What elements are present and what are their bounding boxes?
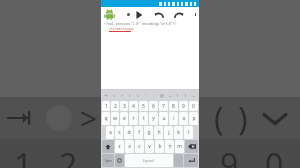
- button[interactable]: Shift: [102, 140, 114, 153]
- button[interactable]: i: [169, 112, 178, 125]
- staticText: w: [113, 115, 117, 122]
- button[interactable]: k: [174, 126, 183, 139]
- button[interactable]: e: [120, 112, 128, 125]
- button[interactable]: g: [144, 126, 153, 139]
- staticText: ": [145, 93, 147, 98]
- staticText: 0: [265, 143, 284, 168]
- button[interactable]: ⌄: [190, 91, 198, 100]
- button[interactable]: 0: [189, 101, 198, 111]
- staticText: 3: [123, 103, 126, 110]
- staticText: q: [104, 115, 108, 122]
- staticText: 5: [142, 103, 145, 110]
- button[interactable]: >: [118, 91, 126, 100]
- button[interactable]: v: [145, 140, 154, 153]
- staticText: :: [153, 93, 155, 98]
- staticText: 8: [172, 103, 175, 110]
- staticText: v: [148, 143, 151, 150]
- staticText: Espanol: [143, 159, 155, 163]
- staticText: z: [118, 143, 121, 150]
- button[interactable]: Settings: [115, 154, 124, 167]
- button[interactable]: m: [175, 140, 184, 153]
- button[interactable]: Run: [133, 9, 144, 20]
- staticText: <LinearLayout: [109, 27, 134, 31]
- button[interactable]: d: [124, 126, 133, 139]
- button[interactable]: Enter: [184, 154, 198, 167]
- button[interactable]: 3: [120, 101, 128, 111]
- staticText: 2: [114, 103, 117, 110]
- staticText: 6: [152, 103, 155, 110]
- button[interactable]: 2: [111, 101, 119, 111]
- button[interactable]: ): [182, 91, 190, 100]
- staticText: 9: [220, 143, 239, 168]
- staticText: k: [177, 129, 180, 136]
- button[interactable]: Symbols: [102, 154, 114, 167]
- button[interactable]: +: [166, 91, 174, 100]
- button[interactable]: 5: [139, 101, 148, 111]
- staticText: Sym: [105, 159, 112, 163]
- button[interactable]: 8: [169, 101, 178, 111]
- button[interactable]: /: [126, 91, 134, 100]
- staticText: j: [168, 129, 170, 136]
- staticText: (: [177, 93, 179, 98]
- staticText: f: [138, 129, 140, 136]
- staticText: l: [188, 129, 190, 136]
- button[interactable]: 6: [149, 101, 158, 111]
- button[interactable]: p: [189, 112, 198, 125]
- staticText: ⌄: [192, 93, 196, 98]
- staticText: 3: [104, 143, 123, 168]
- button[interactable]: n: [165, 140, 174, 153]
- button[interactable]: c: [135, 140, 144, 153]
- button[interactable]: 1: [102, 101, 110, 111]
- button[interactable]: y: [149, 112, 158, 125]
- button[interactable]: b: [155, 140, 164, 153]
- button[interactable]: j: [164, 126, 173, 139]
- staticText: 2: [59, 143, 78, 168]
- button[interactable]: Space: [125, 154, 173, 167]
- button[interactable]: ": [142, 91, 150, 100]
- staticText: o: [182, 115, 186, 122]
- button[interactable]: @: [158, 91, 166, 100]
- staticText: a: [109, 129, 112, 136]
- button[interactable]: q: [102, 112, 110, 125]
- staticText: n: [168, 143, 172, 150]
- button[interactable]: o: [179, 112, 188, 125]
- button[interactable]: Backspace: [185, 140, 198, 153]
- button[interactable]: =: [134, 91, 142, 100]
- button[interactable]: x: [125, 140, 134, 153]
- button[interactable]: r: [129, 112, 138, 125]
- button[interactable]: t: [139, 112, 148, 125]
- button[interactable]: f: [134, 126, 143, 139]
- button[interactable]: App icon: [104, 9, 115, 20]
- staticText: x: [128, 143, 131, 150]
- button[interactable]: More options: [192, 8, 199, 20]
- button[interactable]: :: [150, 91, 158, 100]
- staticText: →: [104, 93, 108, 98]
- staticText: <?xml version="1.0" encoding="utf-8"?>: [104, 22, 177, 26]
- button[interactable]: h: [154, 126, 163, 139]
- staticText: >: [80, 98, 98, 139]
- staticText: 1: [14, 143, 33, 168]
- button[interactable]: a: [106, 126, 114, 139]
- button[interactable]: (: [174, 91, 182, 100]
- button[interactable]: l: [184, 126, 193, 139]
- staticText: c: [138, 143, 141, 150]
- staticText: g: [147, 129, 151, 136]
- button[interactable]: 9: [179, 101, 188, 111]
- button[interactable]: Undo: [153, 9, 164, 20]
- button[interactable]: u: [159, 112, 168, 125]
- staticText: s: [118, 129, 121, 136]
- button[interactable]: w: [111, 112, 119, 125]
- button[interactable]: →: [102, 91, 110, 100]
- staticText: h: [157, 129, 161, 136]
- staticText: (: [214, 97, 224, 139]
- button[interactable]: <: [110, 91, 118, 100]
- staticText: i: [173, 115, 175, 122]
- button[interactable]: z: [115, 140, 124, 153]
- button[interactable]: Save: [123, 9, 133, 19]
- button[interactable]: Redo: [173, 9, 184, 20]
- button[interactable]: 7: [159, 101, 168, 111]
- staticText: /: [129, 93, 131, 98]
- button[interactable]: 4: [129, 101, 138, 111]
- button[interactable]: s: [115, 126, 123, 139]
